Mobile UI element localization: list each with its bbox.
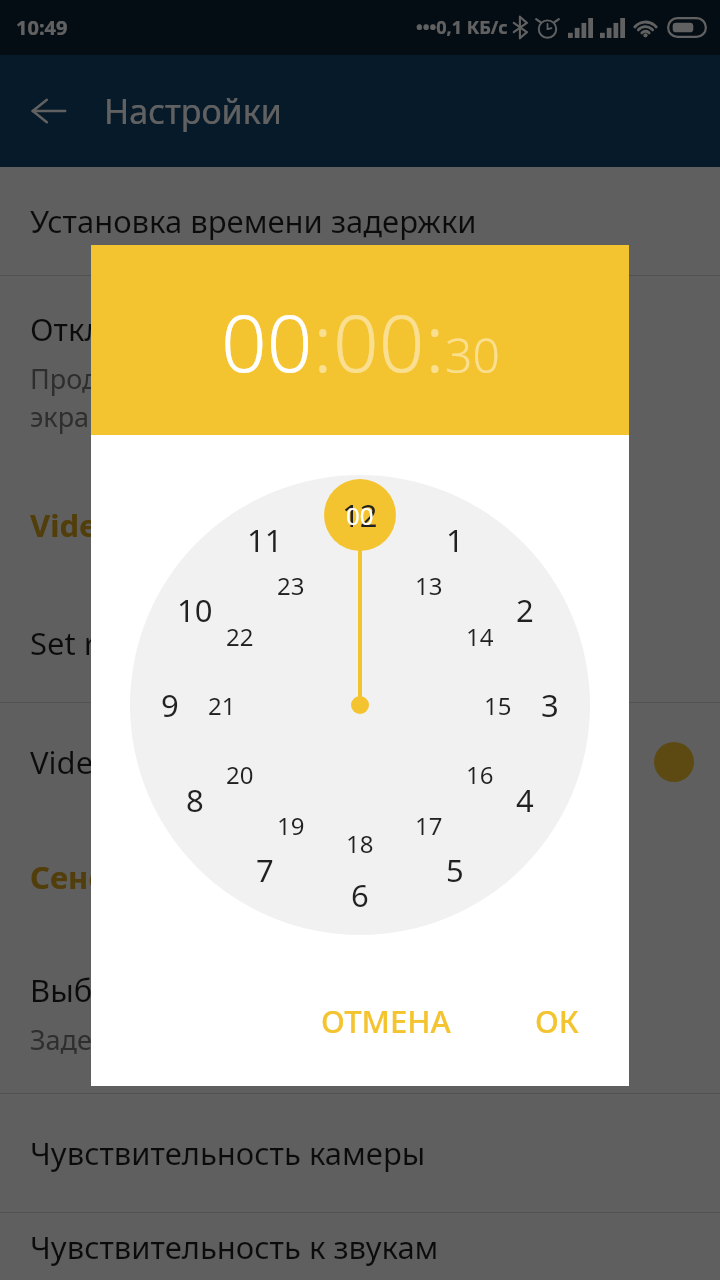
staticText: 15 [484,689,512,722]
staticText: 10:49 [16,14,68,41]
staticText: 5 [446,849,464,891]
button[interactable]: 21 [208,689,236,722]
staticText: 6 [351,874,369,916]
staticText: 17 [415,809,443,842]
button[interactable]: 23 [277,569,305,602]
button[interactable]: 16 [466,758,494,791]
staticText: Задержка до старта записи [30,1021,387,1058]
button[interactable]: 22 [226,620,254,653]
staticText: •••0,1 КБ/с [416,15,508,40]
button[interactable]: 11 [247,519,283,561]
button[interactable]: 13 [415,569,443,602]
button[interactable]: Back [20,82,78,140]
staticText: Чувствительность к звукам [30,1226,439,1268]
button[interactable]: ОТМЕНА [301,984,471,1058]
staticText: 18 [346,827,374,860]
staticText: 22 [226,620,254,653]
staticText: 3 [541,684,559,726]
button: 00 [91,245,629,1086]
staticText: Продолжать запись при выключенном экране [30,360,541,435]
button[interactable]: 00 [333,286,425,395]
staticText: Сенсоры [30,856,170,898]
staticText: 11 [247,519,283,561]
staticText: 12 [342,494,378,536]
staticText: 19 [277,809,305,842]
button[interactable]: ОК [515,984,599,1058]
staticText: Настройки [104,88,282,134]
staticText: Set resolution [30,622,232,664]
button[interactable]: 10 [177,589,213,631]
button[interactable]: 19 [277,809,305,842]
button[interactable]: Чувствительность к звукам [0,1213,720,1280]
staticText: 8 [186,779,204,821]
staticText: Отключение экрана [30,308,331,350]
button[interactable]: 9 [161,684,179,726]
button[interactable]: 8 [186,779,204,821]
staticText: 00 [346,499,374,532]
staticText: Выбор задержки [30,969,284,1011]
staticText: : [313,286,333,395]
button[interactable]: 7 [256,849,274,891]
button[interactable]: 00 [221,286,313,395]
button[interactable]: Выбор задержки [0,933,720,1093]
button[interactable]: 1 [446,519,464,561]
button[interactable]: 2 [516,589,534,631]
button[interactable]: Отключение экрана [0,276,720,466]
staticText: 10 [177,589,213,631]
button[interactable]: 3 [541,684,559,726]
button[interactable]: Video settings [0,466,720,584]
staticText: 14 [466,620,494,653]
button[interactable]: 18 [346,827,374,860]
staticText: Video settings [30,504,251,546]
staticText: Установка времени задержки [30,200,477,242]
button[interactable]: 00 [346,499,374,532]
staticText: 13 [415,569,443,602]
button[interactable]: 6 [351,874,369,916]
staticText: 9 [161,684,179,726]
button[interactable]: Video quality [0,703,720,821]
button[interactable]: 4 [516,779,534,821]
staticText: Video quality [30,741,219,783]
button[interactable]: Чувствительность камеры [0,1094,720,1212]
staticText: ОК [535,1000,579,1042]
button[interactable]: Сенсоры [0,821,720,933]
button[interactable]: 5 [446,849,464,891]
button[interactable]: 30 [445,322,500,387]
staticText: ОТМЕНА [321,1000,451,1042]
button[interactable]: Set resolution [0,584,720,702]
staticText: Чувствительность камеры [30,1132,426,1174]
staticText: 2 [516,589,534,631]
button[interactable]: 12 [342,494,378,536]
button[interactable]: 14 [466,620,494,653]
staticText: 23 [277,569,305,602]
staticText: 1 [446,519,464,561]
button[interactable]: Установка времени задержки [0,167,720,275]
staticText: : [425,286,445,395]
staticText: 16 [466,758,494,791]
staticText: 21 [208,689,236,722]
staticText: 7 [256,849,274,891]
button[interactable]: 17 [415,809,443,842]
button[interactable]: 20 [226,758,254,791]
button[interactable]: 15 [484,689,512,722]
staticText: 20 [226,758,254,791]
staticText: 4 [516,779,534,821]
